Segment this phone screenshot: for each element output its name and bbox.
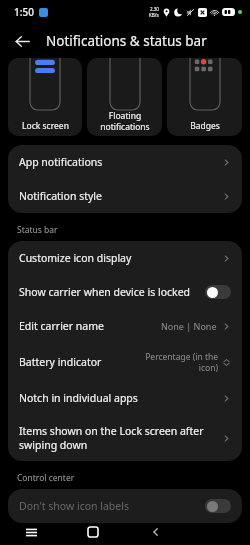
button[interactable]: Battery indicator (8, 343, 242, 381)
staticText: None | None (161, 320, 217, 332)
staticText: Edit carrier name (19, 319, 161, 333)
button[interactable]: Notch in individual apps (8, 381, 242, 415)
button[interactable]: Items shown on the Lock screen after swi… (8, 415, 242, 461)
staticText: Floating notifications (100, 110, 150, 132)
button[interactable]: Don't show icon labels (8, 489, 242, 523)
staticText: Notifications & status bar (46, 32, 207, 50)
button[interactable]: Home (80, 519, 106, 545)
staticText: Notch in individual apps (19, 391, 222, 405)
staticText: Customize icon display (19, 251, 222, 265)
staticText: Badges (190, 120, 220, 132)
staticText: Percentage (in the icon) (145, 351, 218, 373)
button[interactable]: Customize icon display (8, 241, 242, 275)
staticText: KB/s (149, 12, 159, 18)
button[interactable]: App notifications (8, 145, 242, 179)
staticText: Battery indicator (19, 355, 145, 369)
button[interactable]: Notification style (8, 179, 242, 213)
button[interactable]: Floating notifications (87, 58, 162, 136)
staticText: Show carrier when device is locked (19, 285, 205, 299)
button[interactable]: Recents (18, 519, 44, 545)
staticText: Items shown on the Lock screen after swi… (19, 424, 222, 452)
staticText: Status bar (17, 224, 58, 236)
staticText: Notification style (19, 189, 222, 203)
staticText: 2.30 (150, 6, 159, 12)
staticText: Lock screen (22, 120, 69, 132)
button[interactable]: Edit carrier name (8, 309, 242, 343)
button[interactable]: Badges (167, 58, 242, 136)
button[interactable]: Back (6, 25, 38, 57)
button[interactable]: Show carrier when device is locked (8, 275, 242, 309)
button[interactable]: Back (143, 519, 169, 545)
staticText: Control center (17, 472, 75, 484)
staticText: App notifications (19, 155, 222, 169)
staticText: 1:50 (14, 5, 34, 19)
staticText: Don't show icon labels (19, 499, 205, 513)
button[interactable]: Lock screen (8, 58, 82, 136)
